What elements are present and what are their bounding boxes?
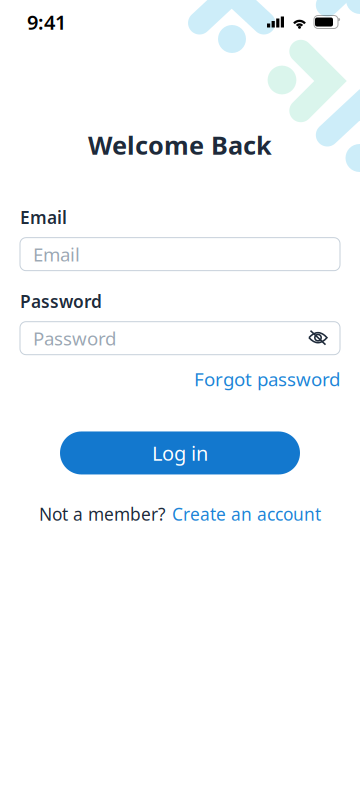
staticText: Password — [33, 326, 116, 351]
staticText: Email — [33, 242, 80, 267]
button[interactable]: Log in — [60, 431, 300, 474]
staticText: Not a member? — [39, 502, 166, 525]
staticText: Email — [20, 206, 67, 229]
staticText: Welcome Back — [88, 128, 272, 162]
staticText: Log in — [152, 440, 208, 466]
staticText: Create an account — [172, 502, 321, 525]
staticText: Forgot password — [194, 367, 340, 391]
button[interactable]: Create an account — [172, 502, 321, 525]
staticText: Password — [20, 290, 102, 313]
staticText: 9:41 — [27, 9, 66, 35]
button[interactable]: Forgot password — [194, 367, 340, 391]
